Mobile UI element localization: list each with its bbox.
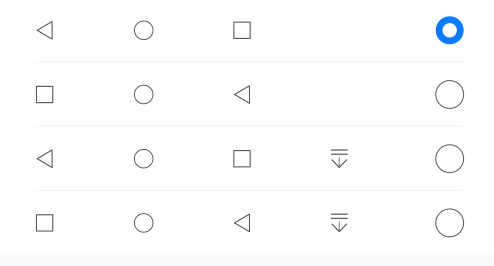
button[interactable]: Option	[0, 0, 494, 62]
button[interactable]: Option	[0, 191, 494, 255]
button[interactable]: Option	[0, 62, 494, 127]
button[interactable]: Option	[0, 127, 494, 191]
